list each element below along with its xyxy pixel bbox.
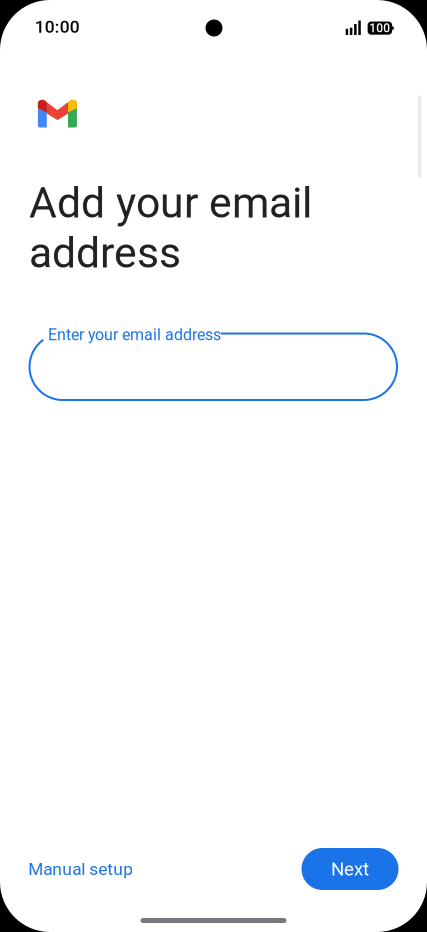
staticText: Manual setup xyxy=(28,859,133,879)
button[interactable]: Next xyxy=(301,848,398,890)
staticText: 100 xyxy=(369,21,390,35)
staticText: Add your email address xyxy=(29,178,312,278)
staticText: Enter your email address xyxy=(48,325,221,344)
staticText: 10:00 xyxy=(35,17,80,37)
button[interactable]: Manual setup xyxy=(28,846,152,892)
staticText: Next xyxy=(331,858,369,880)
button[interactable]: Enter your email address xyxy=(28,332,398,401)
